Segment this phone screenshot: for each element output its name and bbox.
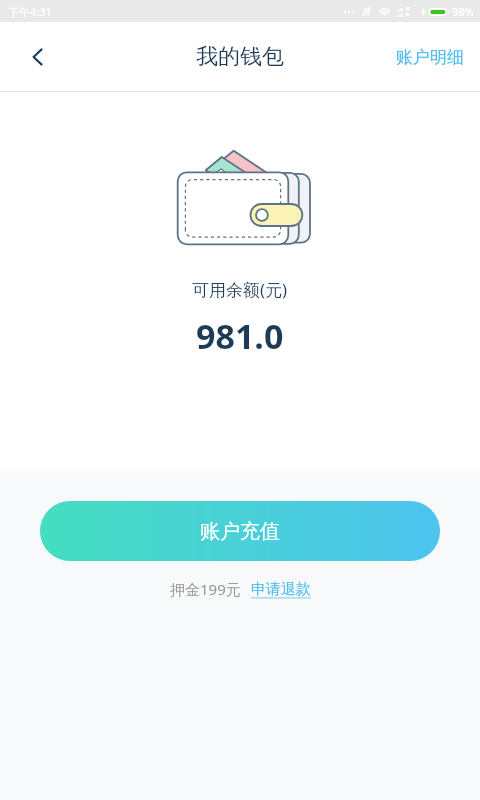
button[interactable]: 账户充值 bbox=[40, 501, 440, 561]
staticText: 下午4:31 bbox=[8, 4, 52, 19]
staticText: 账户充值 bbox=[200, 519, 280, 544]
staticText: 我的钱包 bbox=[196, 43, 284, 71]
button[interactable]: 账户明细 bbox=[380, 33, 480, 81]
staticText: 押金199元 bbox=[170, 579, 241, 599]
button[interactable]: 申请退款 bbox=[251, 580, 311, 599]
button[interactable]: Back bbox=[14, 33, 62, 81]
staticText: 账户明细 bbox=[396, 47, 464, 68]
staticText: 981.0 bbox=[196, 313, 284, 359]
staticText: 98% bbox=[452, 4, 474, 19]
staticText: 可用余额(元) bbox=[192, 278, 288, 301]
staticText: 申请退款 bbox=[251, 580, 311, 599]
